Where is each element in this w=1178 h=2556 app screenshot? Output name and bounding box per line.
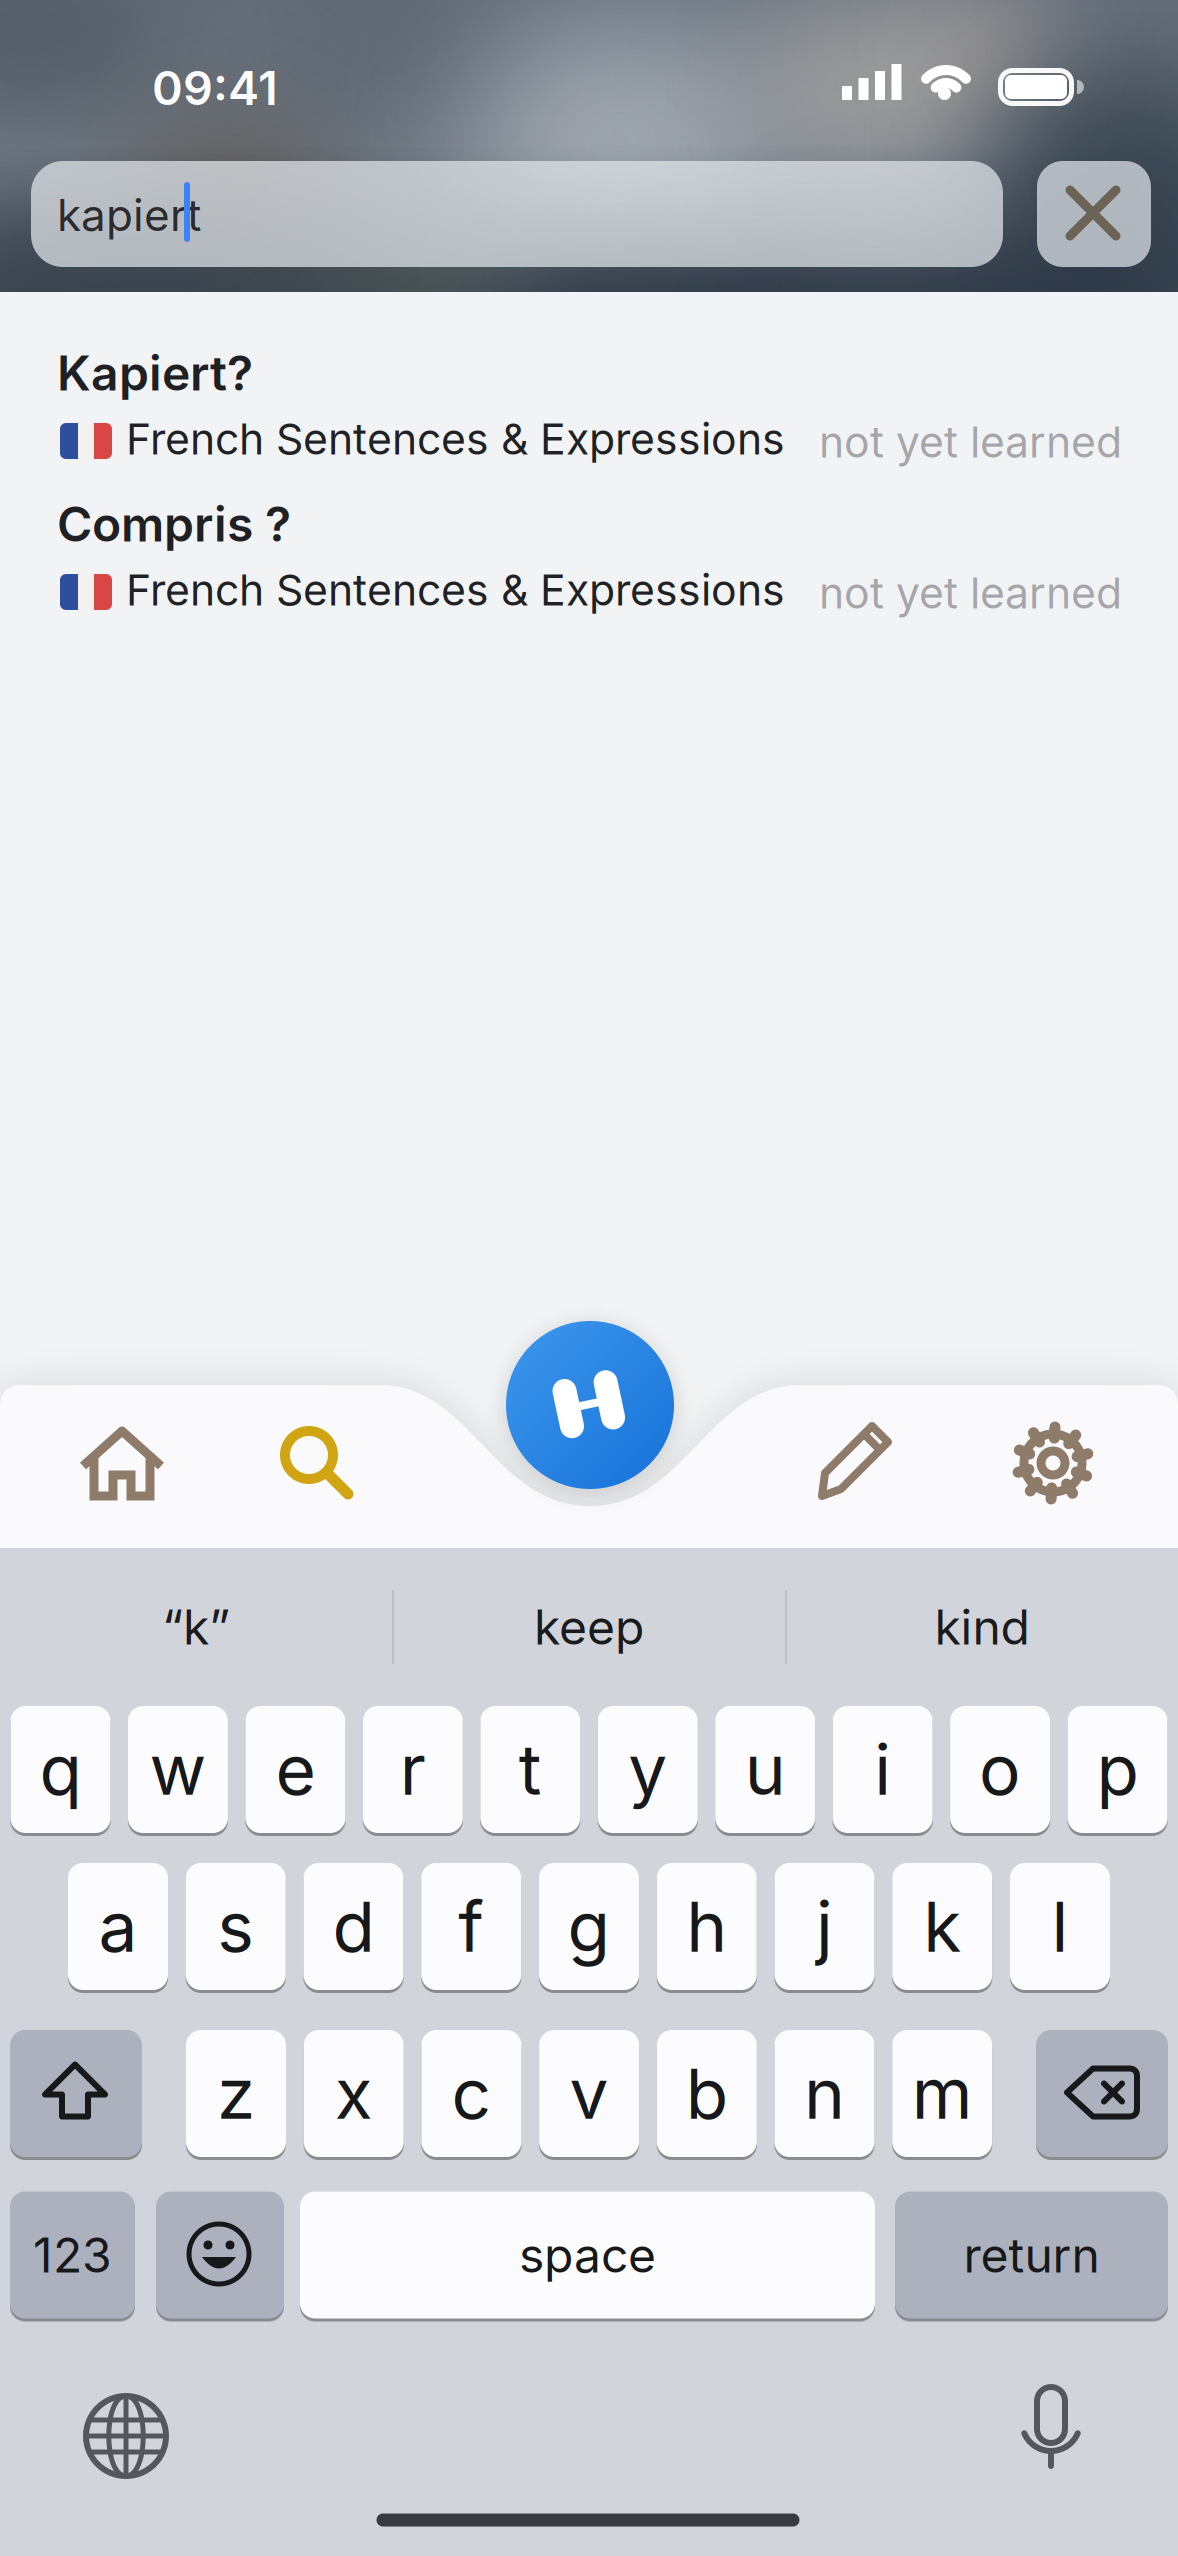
button[interactable]: Search: [227, 1385, 409, 1543]
button[interactable]: t: [480, 1706, 580, 1833]
button[interactable]: Settings: [963, 1385, 1145, 1543]
staticText: o: [979, 1729, 1021, 1810]
staticText: j: [816, 1886, 833, 1967]
staticText: h: [686, 1886, 727, 1967]
staticText: z: [217, 2053, 255, 2134]
button[interactable]: l: [1010, 1863, 1110, 1990]
staticText: n: [804, 2053, 845, 2134]
button[interactable]: space: [300, 2191, 875, 2318]
staticText: d: [332, 1886, 374, 1967]
button[interactable]: n: [774, 2030, 874, 2157]
button[interactable]: g: [539, 1863, 639, 1990]
button[interactable]: b: [657, 2030, 757, 2157]
button[interactable]: keep: [399, 1575, 779, 1679]
button[interactable]: Emoji: [156, 2191, 284, 2318]
button[interactable]: Compris ?: [0, 458, 1178, 608]
button[interactable]: w: [128, 1706, 228, 1833]
button[interactable]: return: [895, 2191, 1168, 2318]
staticText: g: [567, 1886, 610, 1967]
button[interactable]: v: [539, 2030, 639, 2157]
button[interactable]: 123: [10, 2191, 135, 2318]
staticText: not yet learned: [819, 417, 1122, 467]
button[interactable]: c: [421, 2030, 521, 2157]
button[interactable]: u: [715, 1706, 815, 1833]
button[interactable]: e: [245, 1706, 345, 1833]
staticText: Compris ?: [57, 496, 291, 552]
button[interactable]: r: [363, 1706, 463, 1833]
staticText: q: [39, 1729, 81, 1810]
button[interactable]: Kapiert?: [0, 307, 1178, 457]
button[interactable]: Edit: [765, 1385, 947, 1543]
staticText: return: [963, 2227, 1099, 2283]
staticText: r: [400, 1729, 426, 1810]
button[interactable]: Clear search: [1037, 161, 1151, 267]
staticText: p: [1096, 1729, 1138, 1810]
staticText: e: [275, 1729, 315, 1810]
button[interactable]: Dictate: [982, 2363, 1122, 2503]
button[interactable]: Next keyboard: [57, 2367, 197, 2507]
button[interactable]: k: [892, 1863, 992, 1990]
staticText: i: [874, 1729, 891, 1810]
button[interactable]: y: [598, 1706, 698, 1833]
staticText: v: [570, 2053, 609, 2134]
staticText: b: [686, 2053, 728, 2134]
staticText: c: [451, 2053, 491, 2134]
staticText: kind: [934, 1599, 1029, 1655]
staticText: space: [519, 2227, 656, 2283]
button[interactable]: q: [10, 1706, 110, 1833]
button[interactable]: j: [774, 1863, 874, 1990]
staticText: t: [519, 1729, 542, 1810]
staticText: kapiert: [57, 189, 201, 241]
staticText: k: [923, 1886, 961, 1967]
button[interactable]: d: [303, 1863, 403, 1990]
staticText: Kapiert?: [57, 345, 253, 401]
staticText: 09:41: [152, 60, 278, 116]
button[interactable]: Home: [32, 1385, 214, 1543]
staticText: keep: [534, 1599, 644, 1655]
staticText: w: [149, 1729, 206, 1810]
staticText: not yet learned: [819, 568, 1122, 618]
button[interactable]: o: [950, 1706, 1050, 1833]
button[interactable]: Delete: [1036, 2030, 1168, 2157]
button[interactable]: f: [421, 1863, 521, 1990]
button[interactable]: i: [833, 1706, 933, 1833]
button[interactable]: z: [186, 2030, 286, 2157]
staticText: f: [458, 1886, 484, 1967]
button[interactable]: m: [892, 2030, 992, 2157]
button[interactable]: a: [68, 1863, 168, 1990]
button[interactable]: Practice: [506, 1321, 674, 1489]
button[interactable]: x: [304, 2030, 404, 2157]
staticText: French Sentences & Expressions: [126, 565, 785, 615]
staticText: French Sentences & Expressions: [126, 414, 785, 464]
staticText: a: [98, 1886, 137, 1967]
staticText: u: [745, 1729, 786, 1810]
button[interactable]: “k”: [6, 1575, 386, 1679]
staticText: “k”: [162, 1599, 230, 1655]
button[interactable]: h: [657, 1863, 757, 1990]
staticText: s: [217, 1886, 254, 1967]
staticText: 123: [33, 2227, 112, 2283]
staticText: m: [912, 2053, 973, 2134]
staticText: y: [628, 1729, 667, 1810]
button[interactable]: p: [1067, 1706, 1167, 1833]
button[interactable]: s: [186, 1863, 286, 1990]
button[interactable]: kind: [792, 1575, 1172, 1679]
button[interactable]: Shift: [10, 2030, 142, 2157]
staticText: l: [1051, 1886, 1068, 1967]
staticText: x: [335, 2053, 373, 2134]
